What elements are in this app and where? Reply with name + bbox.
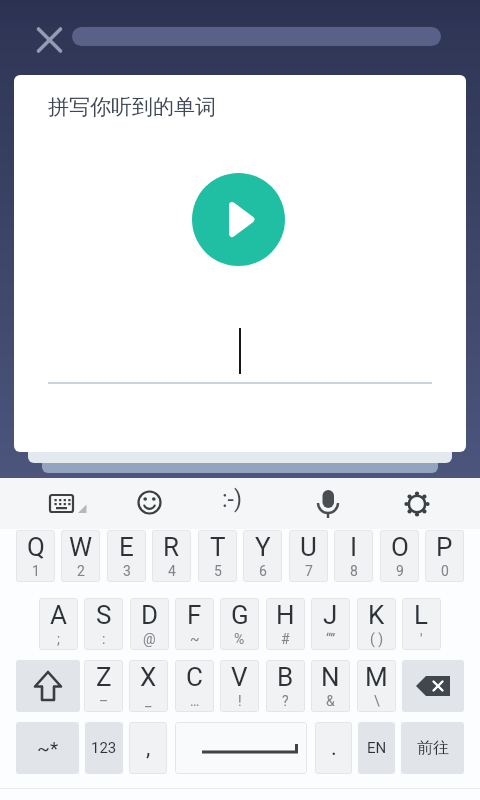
button[interactable]: S (84, 598, 123, 650)
button[interactable]: A (39, 598, 78, 650)
staticText: J (323, 600, 338, 630)
staticText: . (331, 735, 337, 761)
staticText: , (146, 735, 151, 761)
button[interactable]: G (220, 598, 259, 650)
button[interactable]: D (130, 598, 169, 650)
staticText: ! (238, 693, 242, 709)
button[interactable]: Q (16, 530, 55, 582)
staticText: 2 (77, 563, 85, 579)
button[interactable]: E (107, 530, 146, 582)
staticText: 0 (441, 563, 449, 579)
staticText: G (231, 600, 249, 630)
button[interactable]: N (311, 660, 350, 712)
staticText: P (436, 532, 453, 562)
staticText: O (391, 532, 409, 562)
button[interactable] (192, 173, 285, 266)
staticText: X (140, 662, 157, 692)
staticText: % (234, 631, 245, 647)
button[interactable]: X (129, 660, 168, 712)
staticText: A (50, 600, 67, 630)
staticText: D (141, 600, 159, 630)
staticText: Q (27, 532, 45, 562)
button[interactable]: P (425, 530, 464, 582)
staticText: 5 (214, 563, 222, 579)
staticText: L (414, 600, 429, 630)
button[interactable] (126, 478, 174, 529)
staticText: “” (326, 631, 336, 647)
button[interactable] (175, 722, 307, 774)
staticText: R (163, 532, 180, 562)
staticText: ; (57, 631, 60, 647)
staticText: _ (145, 693, 152, 709)
button[interactable]: 前往 (401, 722, 464, 774)
button[interactable]: U (289, 530, 328, 582)
button[interactable]: W (61, 530, 100, 582)
button[interactable]: EN (358, 722, 395, 774)
button[interactable]: O (380, 530, 419, 582)
staticText: 6 (259, 563, 267, 579)
staticText: N (321, 662, 340, 692)
staticText: … (190, 693, 200, 709)
button[interactable]: H (266, 598, 305, 650)
button[interactable]: M (357, 660, 396, 712)
button[interactable]: ~* (16, 722, 79, 774)
button[interactable] (16, 660, 80, 712)
button[interactable]: Z (84, 660, 123, 712)
staticText: Z (96, 662, 112, 692)
staticText: 8 (350, 563, 358, 579)
button[interactable]: L (402, 598, 441, 650)
button[interactable]: . (315, 722, 352, 774)
staticText: 1 (32, 563, 40, 579)
staticText: U (300, 532, 317, 562)
staticText: : (102, 631, 106, 647)
staticText: 拼写你听到的单词 (48, 94, 216, 120)
staticText: & (326, 693, 335, 709)
staticText: C (186, 662, 203, 692)
button[interactable] (30, 22, 68, 60)
staticText: W (69, 532, 93, 562)
staticText: F (187, 600, 202, 630)
button[interactable]: B (266, 660, 305, 712)
staticText: \ (374, 693, 380, 709)
staticText: M (365, 662, 388, 692)
staticText: ~* (37, 737, 59, 759)
button[interactable]: Y (243, 530, 282, 582)
button[interactable] (214, 478, 262, 529)
staticText: 7 (305, 563, 313, 579)
staticText: E (119, 532, 134, 562)
button[interactable]: F (175, 598, 214, 650)
button[interactable]: I (334, 530, 373, 582)
staticText: V (231, 662, 248, 692)
button[interactable] (402, 660, 464, 712)
button[interactable]: , (129, 722, 167, 774)
staticText: ' (420, 631, 423, 647)
button[interactable]: T (198, 530, 237, 582)
staticText: # (281, 631, 290, 647)
button[interactable]: R (152, 530, 191, 582)
staticText: ~ (190, 631, 200, 647)
button[interactable]: C (175, 660, 214, 712)
staticText: Y (255, 532, 271, 562)
staticText: S (96, 600, 112, 630)
staticText: :-) (222, 486, 242, 513)
button[interactable]: 123 (85, 722, 123, 774)
staticText: 9 (396, 563, 404, 579)
staticText: 123 (91, 739, 117, 757)
staticText: H (276, 600, 295, 630)
button[interactable]: J (311, 598, 350, 650)
staticText: 3 (123, 563, 131, 579)
button[interactable]: K (357, 598, 396, 650)
staticText: I (350, 532, 358, 562)
staticText: 4 (168, 563, 176, 579)
button[interactable] (38, 478, 86, 529)
button[interactable] (304, 478, 352, 529)
button[interactable] (393, 478, 441, 529)
staticText: 前往 (417, 738, 449, 758)
staticText: ? (282, 693, 289, 709)
staticText: B (277, 662, 294, 692)
staticText: @ (143, 631, 156, 647)
staticText: ( ) (370, 631, 384, 647)
staticText: K (368, 600, 385, 630)
staticText: – (99, 693, 109, 709)
button[interactable]: V (220, 660, 259, 712)
